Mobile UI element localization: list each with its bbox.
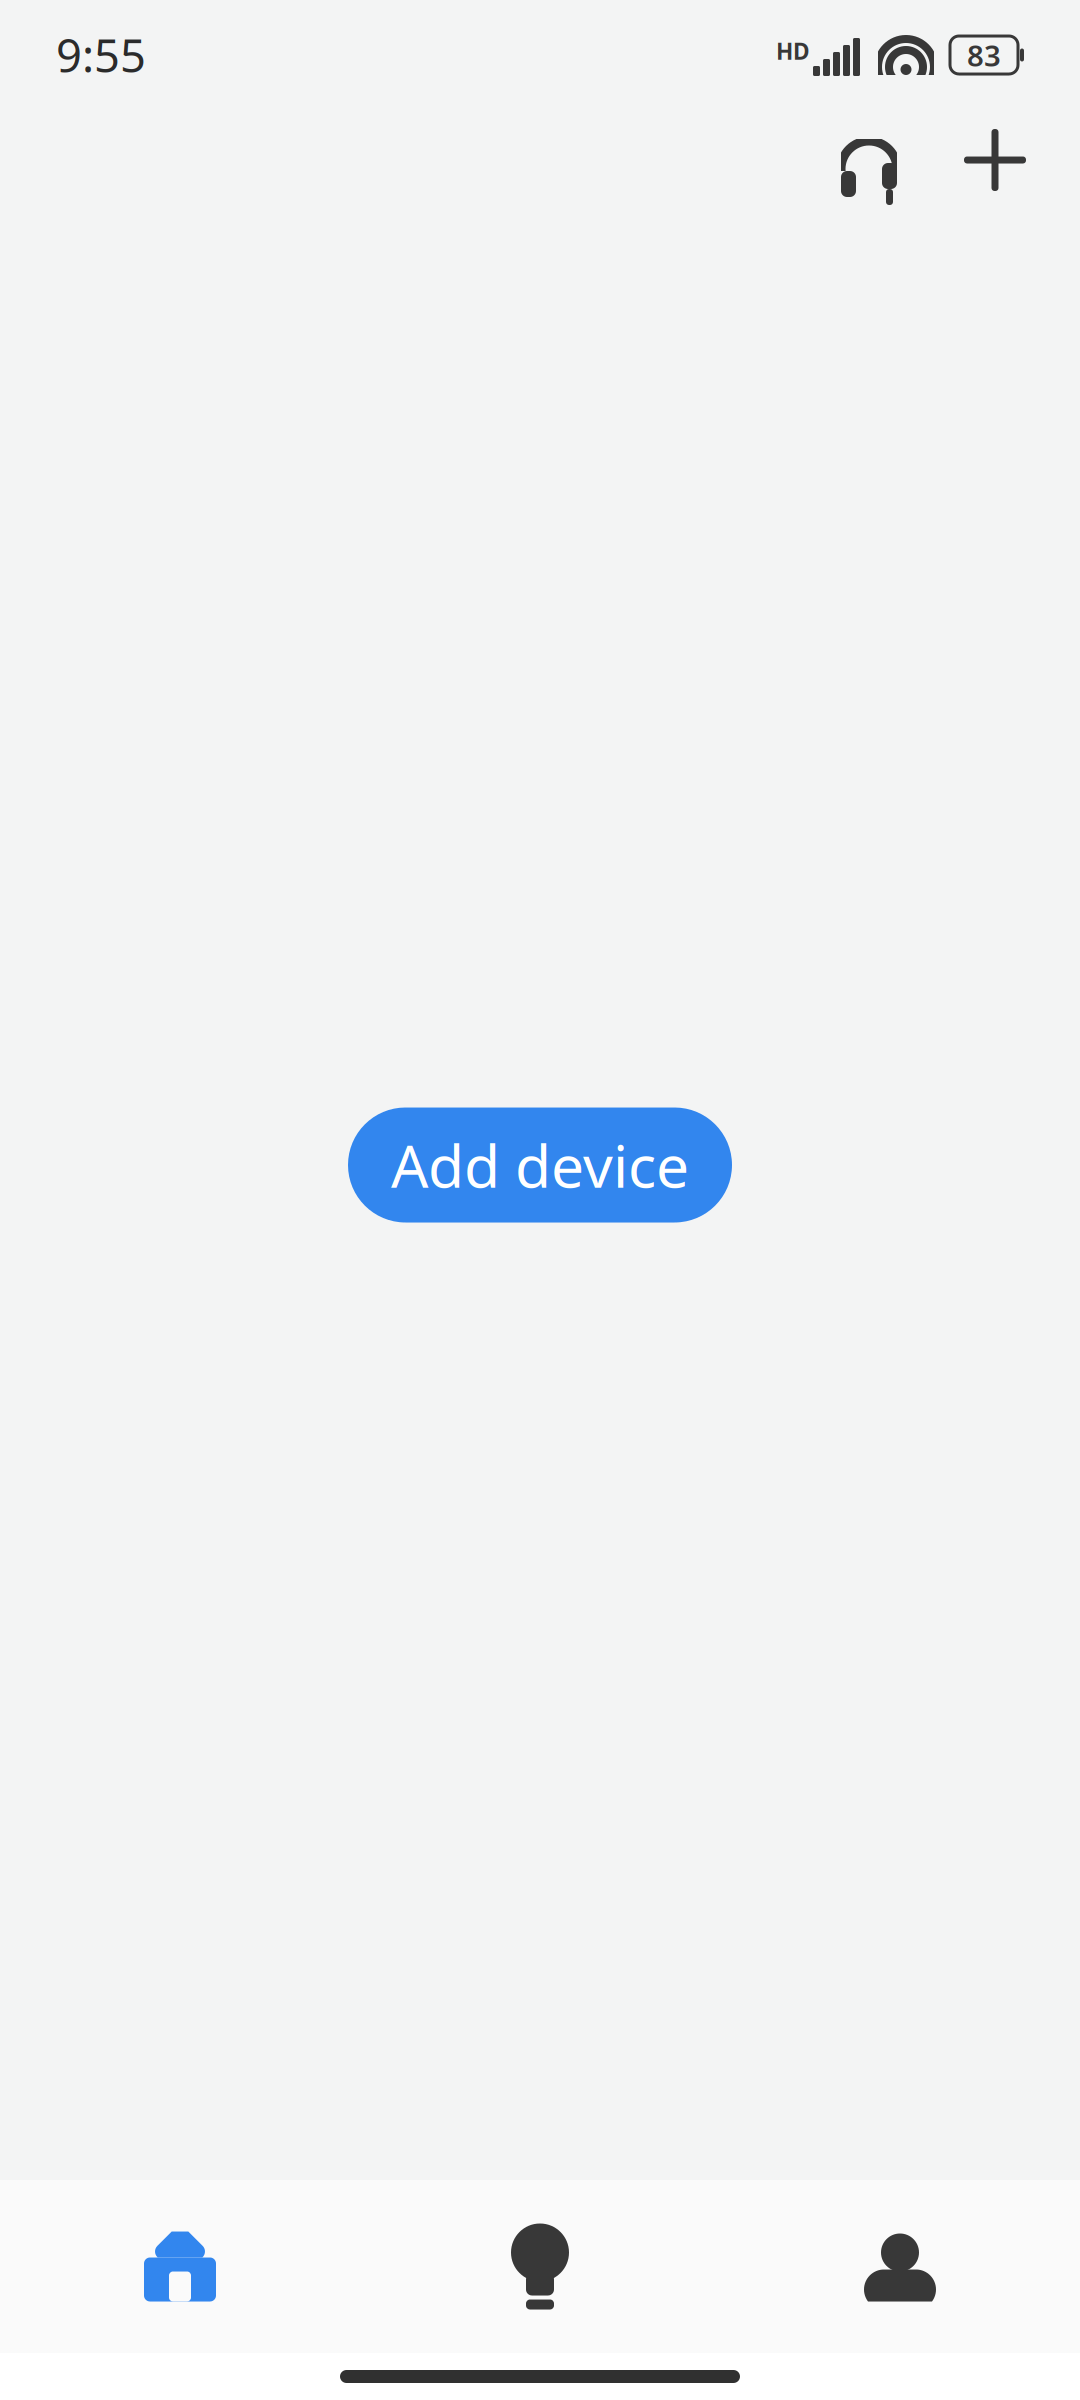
staticText: 83 [967, 35, 1001, 74]
button[interactable]: Add device [348, 1107, 732, 1222]
button[interactable]: Support [821, 112, 917, 208]
button[interactable]: Home [0, 2180, 360, 2353]
staticText: HD [776, 36, 810, 66]
button[interactable]: Profile [720, 2180, 1080, 2353]
staticText: 9:55 [56, 25, 146, 85]
button[interactable]: Add [947, 112, 1043, 208]
staticText: Add device [391, 1126, 689, 1204]
button[interactable]: Scenes [360, 2180, 720, 2353]
